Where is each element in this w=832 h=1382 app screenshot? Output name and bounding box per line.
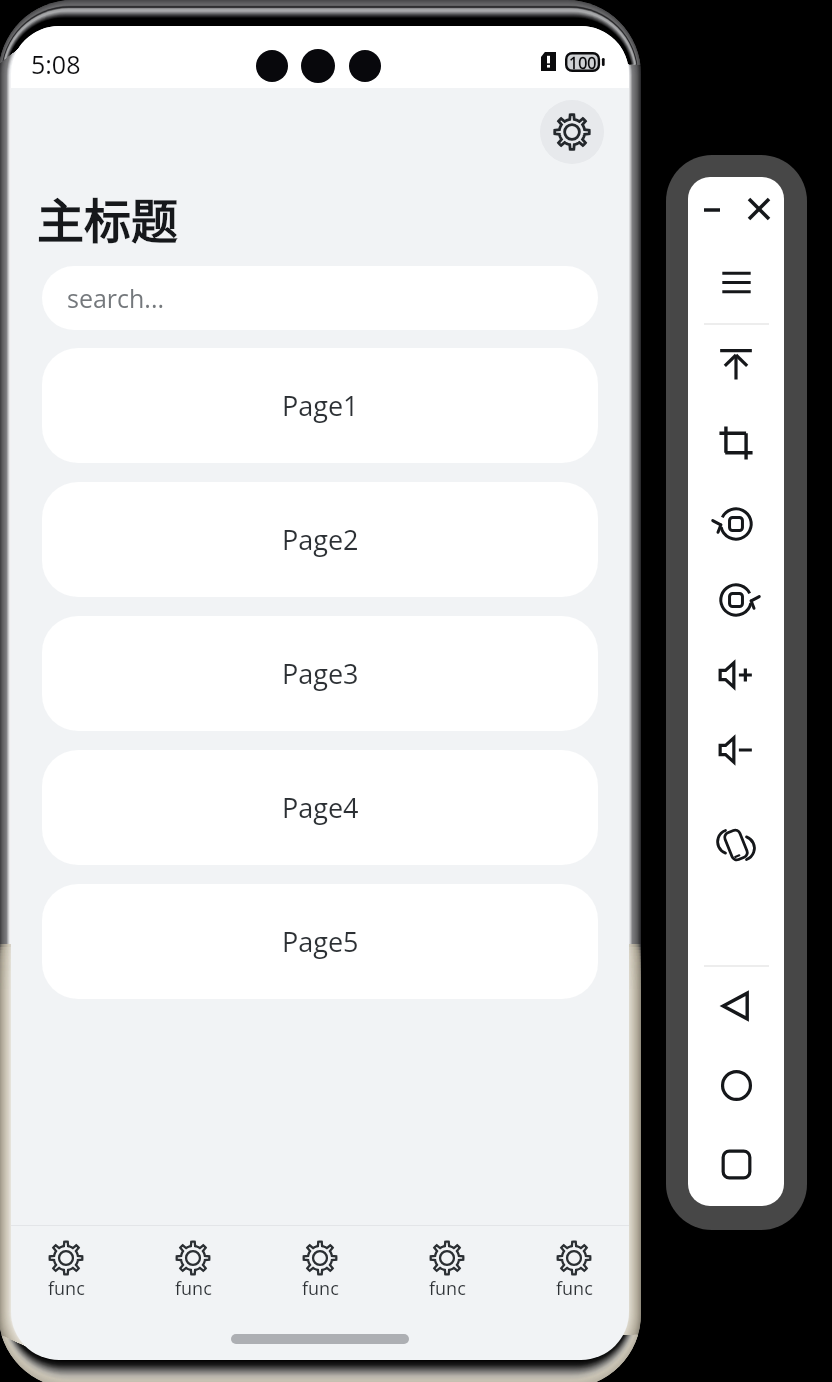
button[interactable]: Page2 <box>42 482 598 597</box>
button[interactable]: Minimize <box>692 190 732 230</box>
staticText: 100 <box>569 52 597 72</box>
staticText: search... <box>67 281 165 315</box>
staticText: Page5 <box>282 923 359 960</box>
button[interactable]: Close <box>739 189 779 229</box>
button[interactable]: search... <box>42 266 598 330</box>
button[interactable]: Page1 <box>42 348 598 463</box>
button[interactable]: Back <box>688 967 784 1045</box>
button[interactable]: Volume down <box>688 711 784 789</box>
button[interactable]: Upload <box>688 325 784 403</box>
button[interactable]: Page3 <box>42 616 598 731</box>
button[interactable]: Rotate right <box>688 561 784 639</box>
button[interactable]: func <box>287 1228 353 1316</box>
button[interactable]: Crop <box>688 404 784 482</box>
button[interactable]: func <box>541 1228 607 1316</box>
staticText: 5:08 <box>31 47 81 81</box>
staticText: Page3 <box>282 655 359 692</box>
button[interactable]: Home <box>688 1046 784 1124</box>
button[interactable]: Rotate device <box>688 806 784 884</box>
button[interactable]: func <box>414 1228 480 1316</box>
staticText: 主标题 <box>37 183 178 251</box>
button[interactable]: Volume up <box>688 636 784 714</box>
staticText: Page1 <box>282 387 359 424</box>
staticText: func <box>556 1276 593 1301</box>
staticText: func <box>302 1276 339 1301</box>
staticText: Page2 <box>282 521 359 558</box>
button[interactable]: Page5 <box>42 884 598 999</box>
button[interactable]: func <box>33 1228 99 1316</box>
button[interactable]: Rotate left <box>688 485 784 563</box>
button[interactable]: Menu <box>688 243 784 321</box>
staticText: Page4 <box>282 789 359 826</box>
staticText: func <box>429 1276 466 1301</box>
staticText: func <box>48 1276 85 1301</box>
button[interactable]: Page4 <box>42 750 598 865</box>
button[interactable]: Recents <box>688 1125 784 1203</box>
button[interactable]: Settings <box>540 100 604 164</box>
staticText: func <box>175 1276 212 1301</box>
button[interactable]: func <box>160 1228 226 1316</box>
